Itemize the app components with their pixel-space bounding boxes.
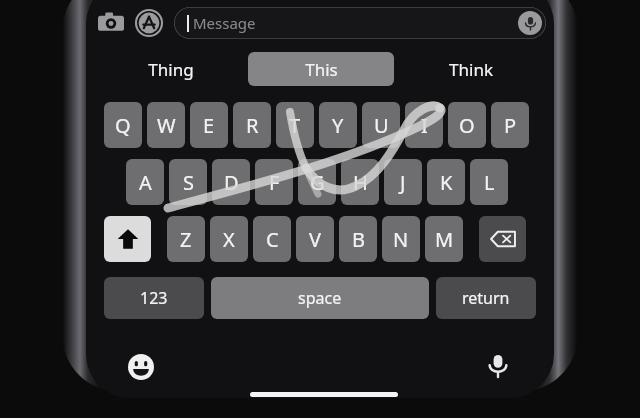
button[interactable]: K — [427, 159, 465, 205]
staticText: G — [310, 169, 325, 196]
button[interactable]: Emoji — [126, 352, 156, 382]
staticText: W — [157, 112, 176, 139]
staticText: R — [246, 112, 259, 139]
staticText: E — [203, 112, 215, 139]
button[interactable]: P — [491, 102, 529, 148]
button[interactable]: V — [296, 216, 334, 262]
button[interactable]: E — [190, 102, 228, 148]
staticText: B — [352, 226, 365, 253]
staticText: U — [374, 112, 389, 139]
staticText: space — [298, 287, 342, 309]
button[interactable]: U — [362, 102, 400, 148]
staticText: P — [504, 112, 517, 139]
button[interactable]: Message — [174, 7, 546, 39]
button[interactable]: Q — [104, 102, 142, 148]
button[interactable]: Thing — [98, 52, 244, 86]
button[interactable]: Backspace — [479, 216, 526, 262]
button[interactable]: R — [233, 102, 271, 148]
button[interactable]: Dictation — [482, 350, 514, 382]
staticText: C — [266, 226, 279, 253]
button[interactable]: return — [436, 277, 536, 319]
staticText: L — [484, 169, 495, 196]
button[interactable]: space — [211, 277, 429, 319]
staticText: H — [353, 169, 368, 196]
button[interactable]: N — [382, 216, 420, 262]
staticText: X — [223, 226, 235, 253]
staticText: O — [459, 112, 475, 139]
button[interactable]: M — [425, 216, 463, 262]
staticText: Z — [180, 226, 192, 253]
staticText: A — [139, 169, 152, 196]
button[interactable]: Camera — [96, 8, 126, 38]
staticText: This — [305, 58, 338, 81]
staticText: S — [183, 169, 194, 196]
button[interactable]: W — [147, 102, 185, 148]
staticText: M — [435, 226, 454, 253]
button[interactable]: A — [126, 159, 164, 205]
staticText: Think — [449, 58, 493, 81]
staticText: Y — [332, 112, 344, 139]
staticText: return — [462, 287, 510, 309]
button[interactable]: This — [248, 52, 394, 86]
staticText: Q — [115, 112, 131, 139]
button[interactable]: Dictate — [518, 11, 542, 35]
button[interactable]: Y — [319, 102, 357, 148]
button[interactable]: S — [169, 159, 207, 205]
button[interactable]: L — [470, 159, 508, 205]
button[interactable]: F — [255, 159, 293, 205]
button[interactable]: G — [298, 159, 336, 205]
button[interactable]: C — [253, 216, 291, 262]
button[interactable]: T — [276, 102, 314, 148]
staticText: I — [421, 112, 428, 139]
button[interactable]: Z — [167, 216, 205, 262]
staticText: J — [400, 169, 406, 196]
staticText: F — [269, 169, 280, 196]
staticText: N — [393, 226, 409, 253]
staticText: V — [309, 226, 321, 253]
staticText: K — [440, 169, 453, 196]
staticText: Thing — [148, 58, 194, 81]
button[interactable]: B — [339, 216, 377, 262]
button[interactable]: Apps — [134, 8, 164, 38]
button[interactable]: I — [405, 102, 443, 148]
button[interactable]: Think — [398, 52, 544, 86]
button[interactable]: J — [384, 159, 422, 205]
staticText: D — [224, 169, 239, 196]
button[interactable]: X — [210, 216, 248, 262]
button[interactable]: 123 — [104, 277, 204, 319]
staticText: T — [289, 112, 301, 139]
button[interactable]: D — [212, 159, 250, 205]
button[interactable]: H — [341, 159, 379, 205]
staticText: 123 — [140, 287, 168, 309]
staticText: Message — [193, 13, 256, 33]
button[interactable]: O — [448, 102, 486, 148]
button[interactable]: Shift — [104, 216, 151, 262]
